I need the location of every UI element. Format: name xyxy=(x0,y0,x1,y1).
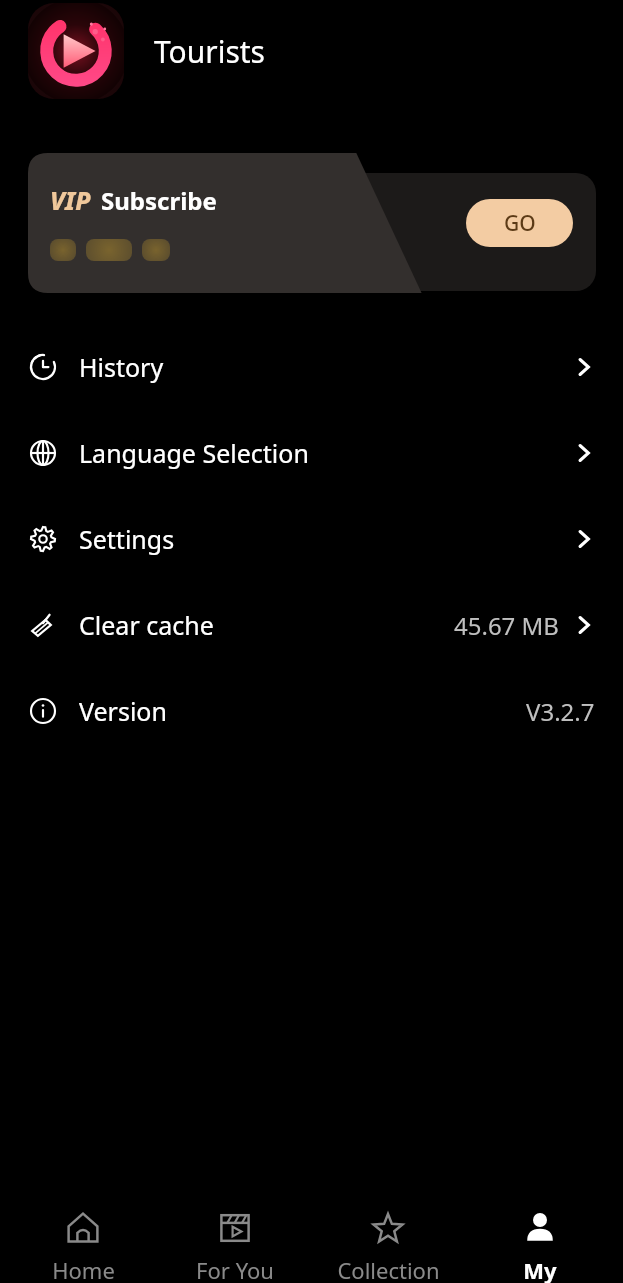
button[interactable]: Settings xyxy=(0,496,623,582)
staticText: GO xyxy=(504,209,536,238)
staticText: Subscribe xyxy=(101,184,217,217)
button[interactable]: Version xyxy=(0,668,623,754)
button[interactable]: GO xyxy=(466,199,573,247)
staticText: Home xyxy=(52,1255,115,1283)
button[interactable]: VIP xyxy=(28,153,596,293)
staticText: For You xyxy=(196,1255,274,1283)
button[interactable]: For You xyxy=(165,1195,305,1283)
staticText: Settings xyxy=(79,522,175,556)
button[interactable]: Language Selection xyxy=(0,410,623,496)
staticText: Clear cache xyxy=(79,608,214,642)
staticText: Tourists xyxy=(154,31,265,72)
staticText: V3.2.7 xyxy=(526,695,595,728)
staticText: Version xyxy=(79,694,167,728)
button[interactable]: Clear cache xyxy=(0,582,623,668)
staticText: Collection xyxy=(337,1255,440,1283)
staticText: VIP xyxy=(50,183,91,217)
button[interactable]: History xyxy=(0,324,623,410)
staticText: My xyxy=(523,1255,557,1283)
button[interactable]: Home xyxy=(13,1195,153,1283)
staticText: History xyxy=(79,350,164,384)
button[interactable]: My xyxy=(470,1195,610,1283)
staticText: Language Selection xyxy=(79,436,309,470)
button[interactable]: Collection xyxy=(318,1195,458,1283)
staticText: 45.67 MB xyxy=(454,609,559,642)
